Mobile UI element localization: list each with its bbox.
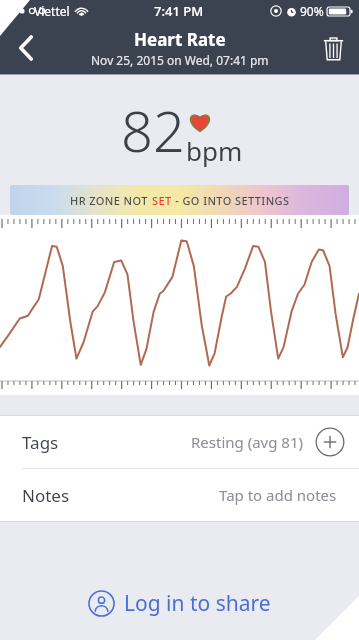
staticText: Notes	[22, 484, 70, 507]
staticText: SET	[152, 193, 172, 208]
staticText: Heart Rate	[134, 28, 226, 51]
staticText: 82	[121, 92, 185, 168]
staticText: 7:41 PM	[154, 2, 204, 20]
staticText: Resting (avg 81)	[191, 432, 303, 452]
staticText: bpm	[186, 133, 243, 168]
staticText: 90%	[300, 3, 324, 19]
staticText: Tap to add notes	[219, 485, 337, 505]
button[interactable]: Add tag	[315, 427, 345, 457]
button[interactable]: Log in to share	[0, 566, 359, 640]
staticText: Nov 25, 2015 on Wed, 07:41 pm	[91, 52, 269, 68]
staticText: HR ZONE NOT	[70, 193, 152, 208]
button[interactable]: HR ZONE NOT	[10, 185, 349, 215]
button[interactable]: Notes	[0, 469, 359, 521]
staticText: Viettel	[34, 3, 70, 19]
staticText: Tags	[22, 431, 59, 454]
staticText: - GO INTO SETTINGS	[172, 193, 290, 208]
button[interactable]: Back	[0, 22, 52, 74]
button[interactable]: Delete	[307, 22, 359, 74]
staticText: Log in to share	[124, 589, 271, 618]
button[interactable]: Tags	[0, 416, 359, 468]
